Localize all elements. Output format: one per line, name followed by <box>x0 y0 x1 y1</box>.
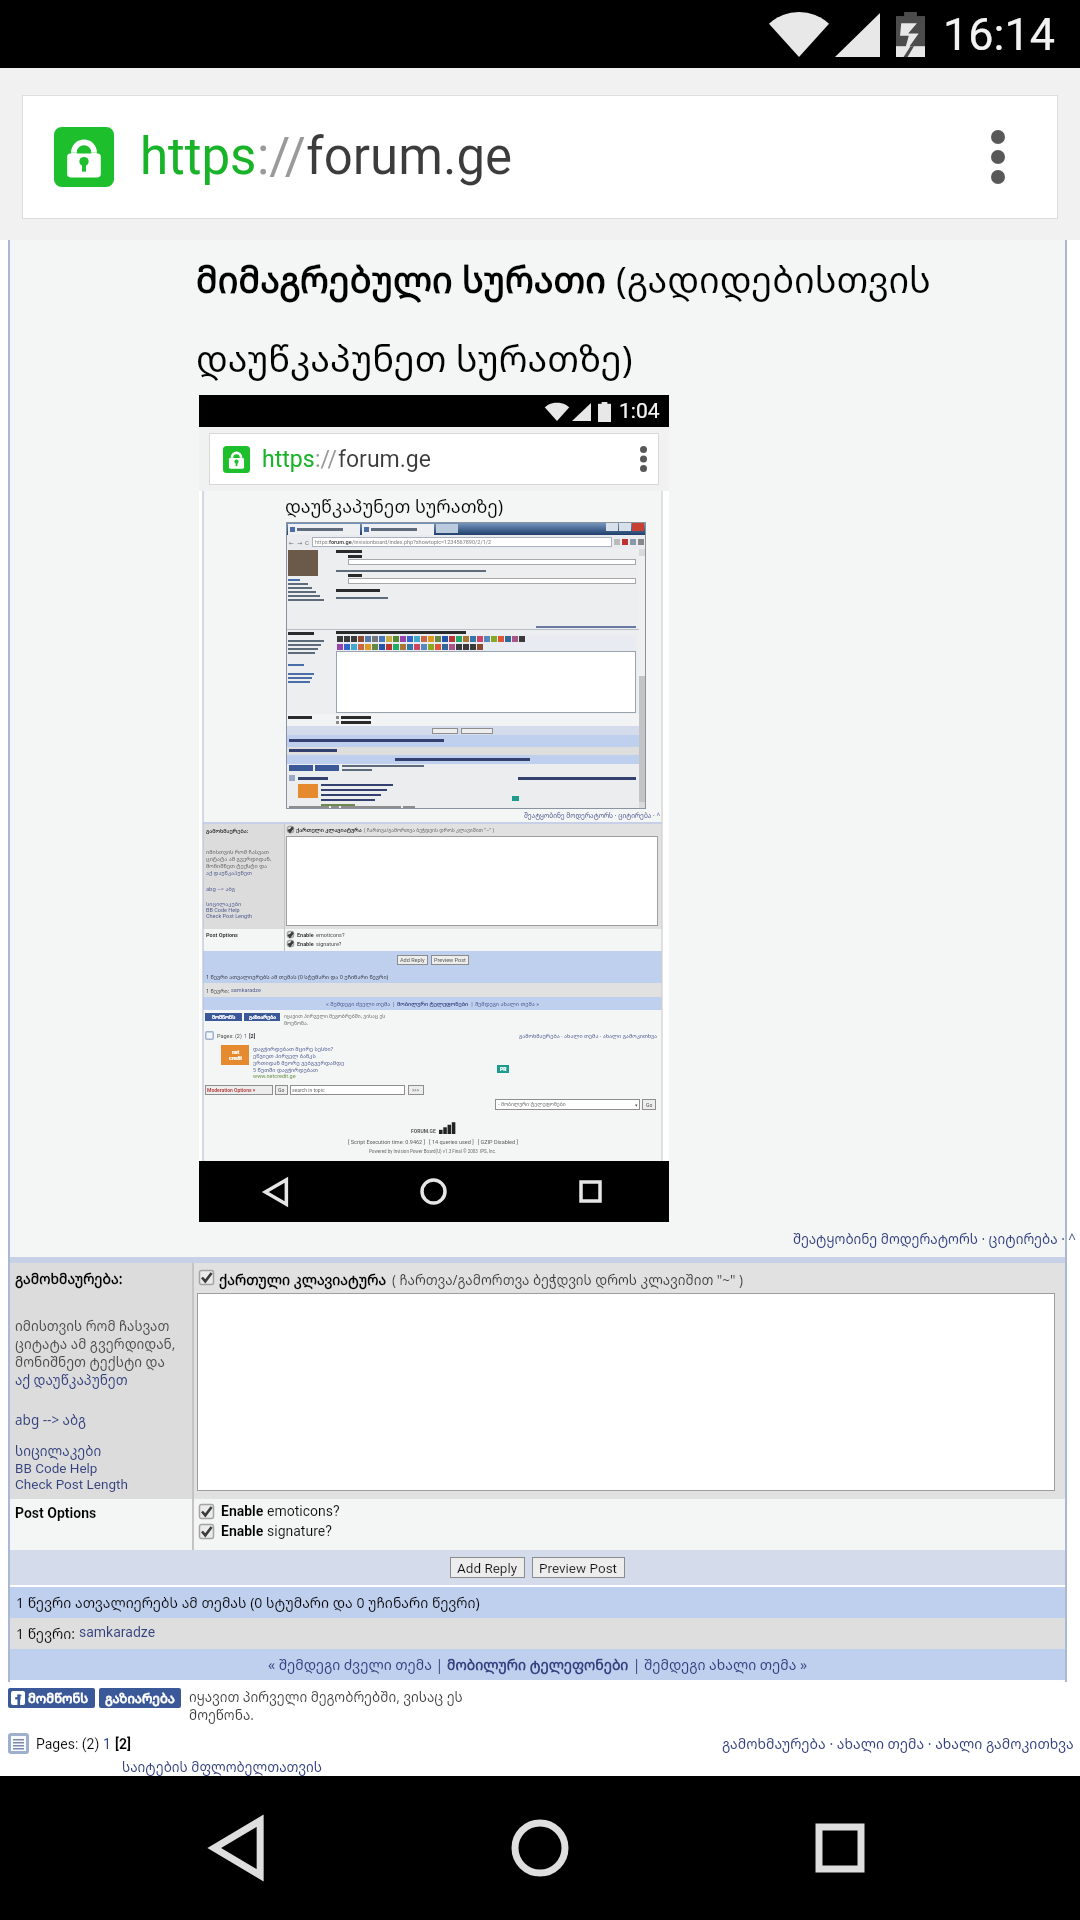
staticText: შეატყობინე მოდერატორს · ციტირება · ^ <box>793 1230 1076 1248</box>
staticText: დაუწკაპუნეთ სურათზე) <box>196 334 633 383</box>
staticText: გამოხმაურება · ახალი თემა · ახალი გამოკი… <box>722 1734 1074 1753</box>
staticText: 1 წევრი ათვალიერებს ამ თემას (0 სტუმარი … <box>16 1593 480 1612</box>
button[interactable]: მომწონს <box>8 1688 95 1708</box>
staticText: https <box>262 446 315 473</box>
staticText: samkaradze <box>231 987 261 993</box>
staticText: Check Post Length <box>15 1476 128 1492</box>
staticText: https <box>140 127 257 187</box>
staticText: Preview Post <box>434 957 466 963</box>
button[interactable]: Back <box>90 1776 390 1920</box>
staticText: 5 წუთში დაგჭირდებათ <box>253 1066 318 1073</box>
staticText: მიმაგრებული სურათი <box>196 255 616 304</box>
staticText: დაუწკაპუნეთ სურათზე) <box>285 494 504 518</box>
staticText: მონიშნეთ ტექსტი და <box>15 1353 165 1371</box>
button[interactable]: Preview Post <box>532 1557 625 1578</box>
staticText: net credit <box>229 1049 242 1061</box>
staticText: Pages: (2) <box>217 1033 244 1039</box>
staticText: Post Options <box>206 932 238 938</box>
staticText: signature? <box>267 1523 332 1539</box>
staticText: search in topic <box>292 1087 325 1093</box>
staticText: « შემდეგი ძველი თემა | <box>326 1000 397 1007</box>
staticText: Check Post Length <box>206 913 252 919</box>
staticText: 16:14 <box>943 8 1056 61</box>
staticText: >>> <box>412 1088 420 1093</box>
staticText: Enable <box>221 1523 267 1539</box>
staticText: forum.ge <box>306 127 513 187</box>
staticText: ეწვიეთ პირველ ბანკს <box>253 1052 316 1059</box>
staticText: | შემდეგი ახალი თემა » <box>629 1655 808 1674</box>
staticText: Enable <box>297 932 316 938</box>
staticText: Pages: (2) <box>36 1736 103 1752</box>
staticText: Powered by Invision Power Board(U) v1.3 … <box>369 1149 497 1154</box>
staticText: მობილური ტელეფონები <box>397 1000 469 1007</box>
staticText: Enable <box>221 1503 267 1519</box>
staticText: forum.ge <box>329 539 352 545</box>
staticText: აქ დაუწკაპუნეთ <box>206 869 252 876</box>
staticText: იყავით პირველი მეგობრებში, ვისაც ეს <box>284 1013 386 1020</box>
staticText: abg --> აბგ <box>206 885 235 892</box>
staticText: 1 წევრი: <box>206 987 231 994</box>
staticText: FORUM.GE <box>411 1128 436 1134</box>
staticText: ერთიდან მეორე ვებგვერდამდე <box>253 1059 345 1066</box>
staticText: :// <box>315 446 338 473</box>
staticText: [2] <box>115 1736 131 1752</box>
staticText: BB Code Help <box>15 1460 98 1476</box>
staticText: :// <box>257 127 306 187</box>
button[interactable]: Home <box>390 1776 690 1920</box>
staticText: იყავით პირველი მეგობრებში, ვისაც ეს <box>189 1688 463 1706</box>
staticText: forum.ge <box>338 446 431 473</box>
staticText: ციტატა ამ გვერდიდან, <box>15 1335 176 1353</box>
staticText: ( ჩართვა/გამორთვა ბეჭდვის დროს კლავიშით … <box>364 827 495 834</box>
staticText: იმისთვის რომ ჩასვათ <box>206 848 269 855</box>
staticText: გამოხმაურება: <box>15 1269 123 1288</box>
staticText: Add Reply <box>400 957 425 963</box>
staticText: abg --> აბგ <box>15 1411 86 1429</box>
staticText: მობილური ტელეფონები <box>447 1655 629 1674</box>
staticText: 1:04 <box>619 399 660 424</box>
staticText: (გადიდებისთვის <box>616 255 931 304</box>
button[interactable]: More options <box>950 95 1046 219</box>
staticText: Go <box>646 1102 653 1108</box>
staticText: Post Options <box>15 1505 97 1521</box>
staticText: გაზიარება <box>249 1014 276 1021</box>
button[interactable]: Add Reply <box>450 1557 525 1578</box>
staticText: მომწონს <box>212 1014 236 1021</box>
staticText: Preview Post <box>539 1560 618 1576</box>
staticText: Enable <box>297 941 316 947</box>
staticText: 1 წევრი: <box>16 1624 79 1643</box>
staticText: samkaradze <box>79 1624 156 1640</box>
staticText: საიტების მფლობელთათვის <box>122 1758 322 1776</box>
staticText: BB Code Help <box>206 907 240 913</box>
staticText: ციტატა ამ გვერდიდან, <box>206 855 272 862</box>
staticText: მონიშნეთ ტექსტი და <box>206 862 268 869</box>
staticText: გამოხმაურება · ახალი თემა · ახალი გამოკი… <box>519 1032 658 1039</box>
staticText: signature? <box>316 941 342 947</box>
staticText: [ Script Execution time: 0.9462 ] [ 14 q… <box>348 1139 518 1145</box>
staticText: გაზიარება <box>105 1689 175 1707</box>
staticText: « შემდეგი ძველი თემა | <box>268 1655 447 1674</box>
staticText: Go <box>278 1087 285 1093</box>
staticText: /invisionboard/index.php?showtopic=12345… <box>352 539 492 545</box>
staticText: https: <box>315 539 329 545</box>
button[interactable]: https <box>22 95 1058 219</box>
staticText: emoticons? <box>267 1503 340 1519</box>
staticText: მოეწონა. <box>189 1706 254 1724</box>
staticText: შეატყობინე მოდერატორს · ციტირება · ^ <box>524 811 661 820</box>
staticText: დაგჭირდებათ მცირე სესხი? <box>253 1045 334 1052</box>
staticText: ( ჩართვა/გამორთვა ბეჭდვის დროს კლავიშით … <box>392 1271 744 1289</box>
staticText: | შემდეგი ახალი თემა » <box>469 1000 539 1007</box>
staticText: ▾ <box>635 1102 638 1108</box>
button[interactable]: გაზიარება <box>99 1688 181 1708</box>
staticText: PR <box>500 1066 507 1072</box>
staticText: www.netcredit.ge <box>253 1073 296 1079</box>
staticText: Moderation Options ▾ <box>207 1087 256 1093</box>
staticText: - მობილური ტელეფონები <box>498 1101 566 1108</box>
staticText: აქ დაუწკაპუნეთ <box>15 1371 128 1389</box>
staticText: სიცილაკები <box>206 900 242 907</box>
button[interactable]: Recents <box>690 1776 990 1920</box>
staticText: 1 <box>244 1033 249 1039</box>
staticText: emoticons? <box>316 932 345 938</box>
staticText: მოეწონა. <box>284 1020 309 1027</box>
staticText: 1 <box>103 1736 115 1752</box>
staticText: გამოხმაურება: <box>206 827 249 834</box>
